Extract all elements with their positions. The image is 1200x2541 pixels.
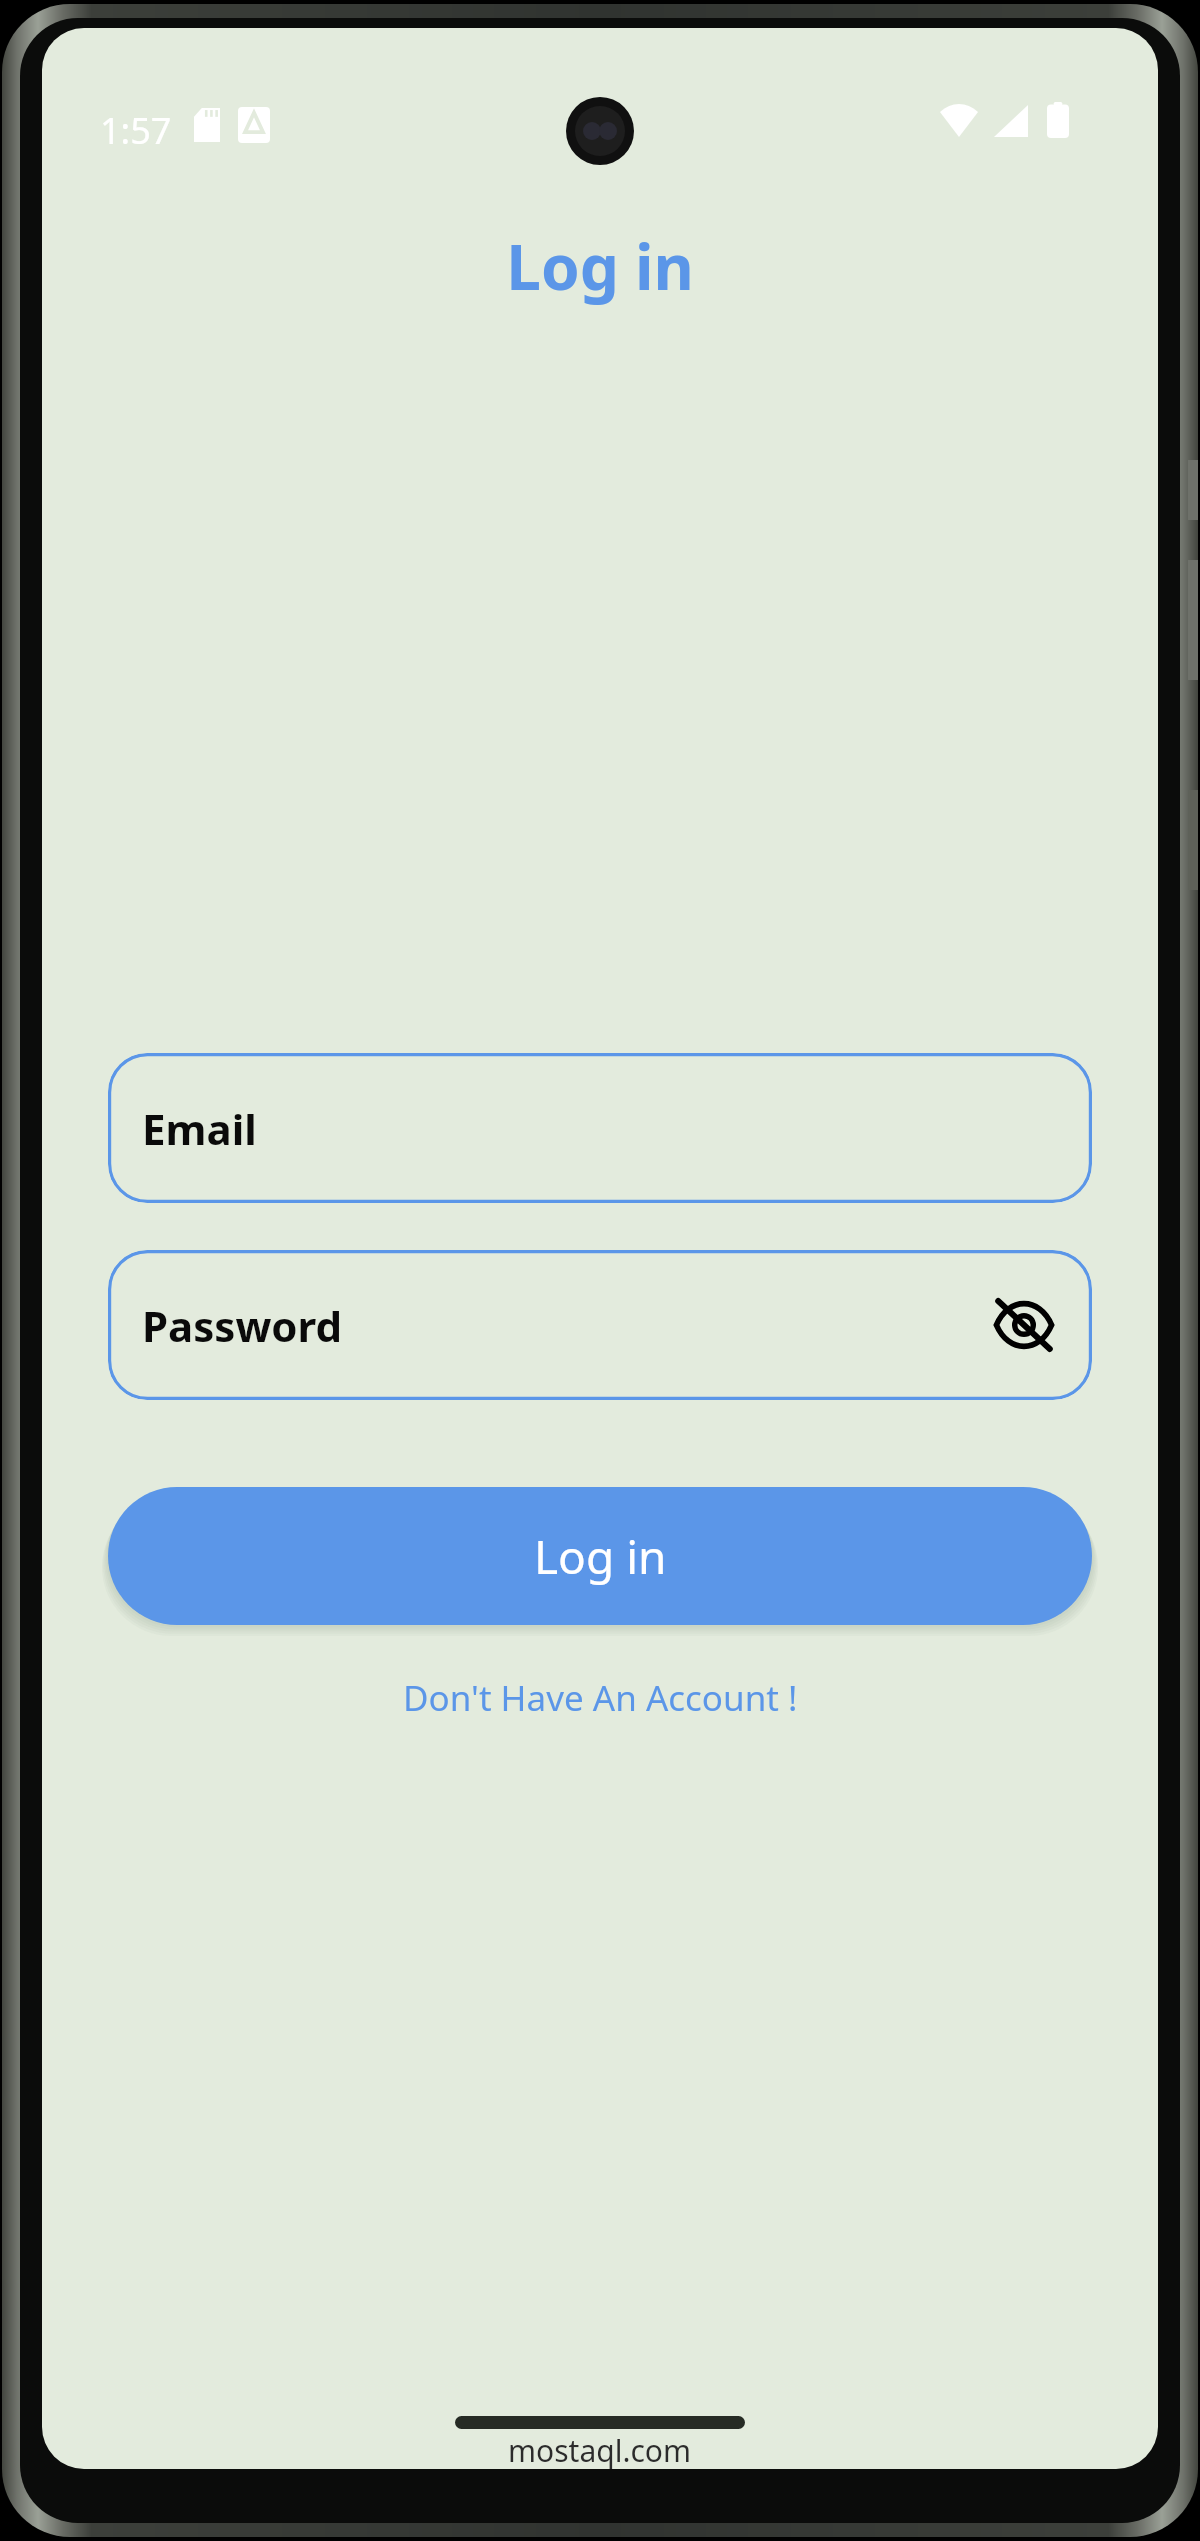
staticText: Password	[142, 1297, 343, 1354]
staticText: 1:57	[100, 106, 172, 155]
button[interactable]: Email	[108, 1053, 1092, 1203]
button[interactable]: Don't Have An Account !	[389, 1666, 812, 1730]
button[interactable]: Log in	[108, 1487, 1092, 1625]
staticText: Log in	[506, 224, 694, 308]
button[interactable]: Show password	[986, 1287, 1062, 1363]
staticText: Email	[142, 1100, 257, 1157]
staticText: mostaql.com	[508, 2430, 692, 2471]
staticText: Log in	[534, 1525, 667, 1588]
staticText: Don't Have An Account !	[403, 1674, 798, 1722]
button[interactable]: Password	[108, 1250, 1092, 1400]
